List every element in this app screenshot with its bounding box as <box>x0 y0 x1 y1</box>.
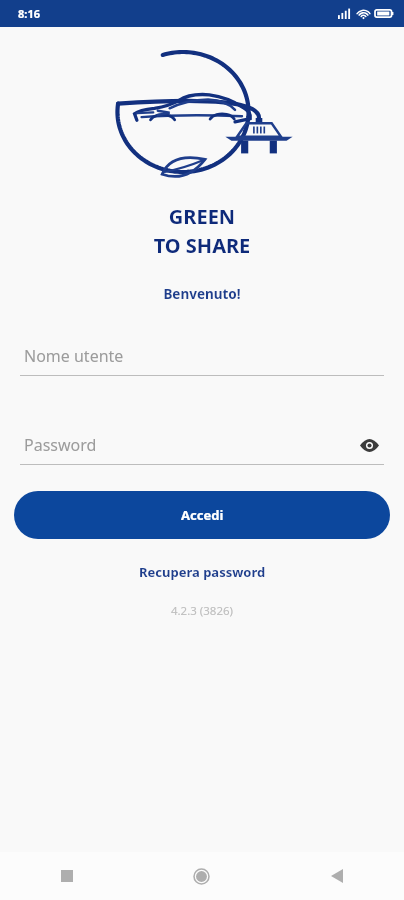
staticText: 8:16 <box>18 6 40 21</box>
staticText: Accedi <box>181 506 224 524</box>
staticText: Recupera password <box>139 563 266 581</box>
button[interactable]: Password <box>20 428 384 462</box>
button[interactable]: Recent apps <box>0 852 134 900</box>
staticText: 4.2.3 (3826) <box>0 603 404 619</box>
button[interactable]: Show password <box>354 430 384 460</box>
button[interactable]: Recupera password <box>0 563 404 581</box>
staticText: TO SHARE <box>0 232 404 259</box>
button[interactable]: Back <box>269 852 404 900</box>
staticText: Benvenuto! <box>0 285 404 303</box>
staticText: Nome utente <box>24 345 124 367</box>
staticText: GREEN <box>0 203 404 230</box>
button[interactable]: Home <box>134 852 269 900</box>
button[interactable]: Nome utente <box>20 339 384 373</box>
button[interactable]: Accedi <box>14 491 390 539</box>
staticText: Password <box>24 434 97 456</box>
